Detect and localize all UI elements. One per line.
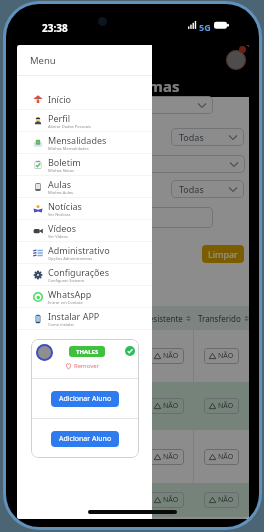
staticText: Ver Notícias <box>48 212 71 217</box>
staticText: THALES <box>76 348 99 356</box>
button[interactable] <box>29 96 213 114</box>
staticText: Aulas <box>48 178 71 190</box>
staticText: NÃO <box>218 351 234 361</box>
staticText: Mensalidades <box>48 134 107 146</box>
staticText: Configurar Sistema <box>48 278 85 283</box>
button[interactable]: Profile <box>226 50 246 70</box>
staticText: NÃO <box>163 401 179 411</box>
button[interactable] <box>29 207 213 228</box>
staticText: Perfil <box>48 112 70 124</box>
button[interactable]: Perfil <box>17 110 152 131</box>
staticText: NÃO <box>218 495 234 505</box>
staticText: Menu <box>30 54 56 67</box>
button[interactable]: WhatsApp <box>17 286 152 307</box>
staticText: Entrar em Contato <box>48 300 83 305</box>
staticText: Todas <box>179 131 204 143</box>
staticText: Administrativo <box>48 244 110 256</box>
button[interactable]: Aulas <box>17 176 152 197</box>
staticText: NÃO <box>163 452 179 462</box>
staticText: Remover <box>74 362 100 370</box>
staticText: Nome <box>22 313 45 324</box>
staticText: 23:38 <box>42 21 68 35</box>
button[interactable]: Remover <box>65 362 100 370</box>
staticText: Turmas <box>124 76 180 96</box>
staticText: Como instalar <box>48 322 75 327</box>
staticText: Início <box>48 93 72 105</box>
staticText: NÃO <box>163 351 179 361</box>
button[interactable]: Administrativo <box>17 242 152 263</box>
staticText: Vídeos <box>48 222 77 234</box>
staticText: Boletim <box>48 156 81 168</box>
button[interactable]: Limpar <box>202 245 244 263</box>
button[interactable]: Mensalidades <box>17 132 152 153</box>
staticText: Minhas Mensalidades <box>48 146 89 151</box>
staticText: Configurações <box>48 266 109 278</box>
button[interactable]: Boletim <box>17 154 152 175</box>
button[interactable]: Adicionar Aluno <box>51 391 119 407</box>
staticText: NÃO <box>218 401 234 411</box>
button[interactable]: Todas <box>29 155 245 173</box>
staticText: WhatsApp <box>48 288 92 300</box>
button[interactable]: Adicionar Aluno <box>51 431 119 447</box>
staticText: Transferido <box>198 313 241 324</box>
staticText: Todas <box>37 158 62 170</box>
button[interactable]: Instalar APP <box>17 308 152 329</box>
staticText: Instalar APP <box>48 310 100 322</box>
staticText: Alterar Dados Pessoais <box>48 124 91 129</box>
button[interactable]: Configurações <box>17 264 152 285</box>
staticText: Adicionar Aluno <box>59 434 112 444</box>
staticText: Notícias <box>48 200 82 212</box>
button[interactable]: Vídeos <box>17 220 152 241</box>
staticText: Adicionar Aluno <box>59 394 112 404</box>
staticText: Ver Vídeos <box>48 234 68 239</box>
staticText: NÃO <box>163 495 179 505</box>
button[interactable]: Início <box>17 88 152 109</box>
staticText: Desistente <box>143 313 183 324</box>
staticText: Minhas Aulas <box>48 190 74 195</box>
staticText: Minhas Notas <box>48 168 74 173</box>
button[interactable]: Notícias <box>17 198 152 219</box>
button[interactable]: Todas <box>171 180 244 198</box>
button[interactable]: Todas <box>171 128 244 146</box>
staticText: Limpar <box>208 248 238 260</box>
staticText: 5G <box>199 21 211 33</box>
staticText: NÃO <box>218 452 234 462</box>
staticText: Opções Administrativas <box>48 256 93 261</box>
staticText: Todas <box>179 183 204 195</box>
